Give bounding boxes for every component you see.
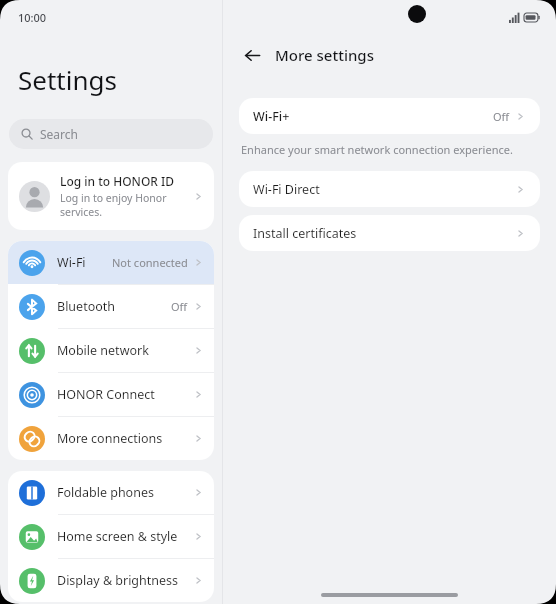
staticText: Foldable phones (57, 484, 193, 501)
staticText: Log in to HONOR ID (60, 173, 175, 189)
staticText: Home screen & style (57, 528, 193, 545)
staticText: Wi-Fi Direct (253, 181, 515, 198)
button[interactable]: Mobile network (8, 329, 214, 372)
button[interactable]: Wi-Fi Direct (239, 171, 540, 207)
staticText: More connections (57, 430, 193, 447)
staticText: Search (40, 126, 78, 142)
button[interactable]: Wi-Fi+ (239, 98, 540, 134)
staticText: Not connected (112, 255, 188, 270)
staticText: Bluetooth (57, 298, 171, 315)
staticText: HONOR Connect (57, 386, 193, 403)
staticText: Log in to enjoy Honor services. (60, 191, 167, 219)
staticText: Off (171, 299, 188, 314)
button[interactable]: Home screen & style (8, 515, 214, 558)
staticText: Install certificates (253, 225, 515, 242)
button[interactable]: Bluetooth (8, 285, 214, 328)
staticText: Wi-Fi (57, 254, 112, 271)
staticText: More settings (275, 45, 374, 65)
button[interactable]: Log in to HONOR ID (8, 162, 214, 230)
staticText: 10:00 (18, 10, 47, 25)
staticText: Enhance your smart network connection ex… (241, 142, 513, 157)
button[interactable]: More connections (8, 417, 214, 460)
button[interactable]: HONOR Connect (8, 373, 214, 416)
button[interactable]: Display & brightness (8, 559, 214, 602)
staticText: Settings (18, 62, 117, 97)
button[interactable]: Foldable phones (8, 471, 214, 514)
staticText: Off (493, 109, 510, 124)
staticText: Wi-Fi+ (253, 108, 493, 125)
button[interactable]: Search (9, 119, 213, 149)
button[interactable]: Wi-Fi (8, 241, 214, 284)
button[interactable]: Install certificates (239, 215, 540, 251)
button[interactable]: Back (237, 40, 267, 70)
staticText: Mobile network (57, 342, 193, 359)
staticText: Display & brightness (57, 572, 193, 589)
